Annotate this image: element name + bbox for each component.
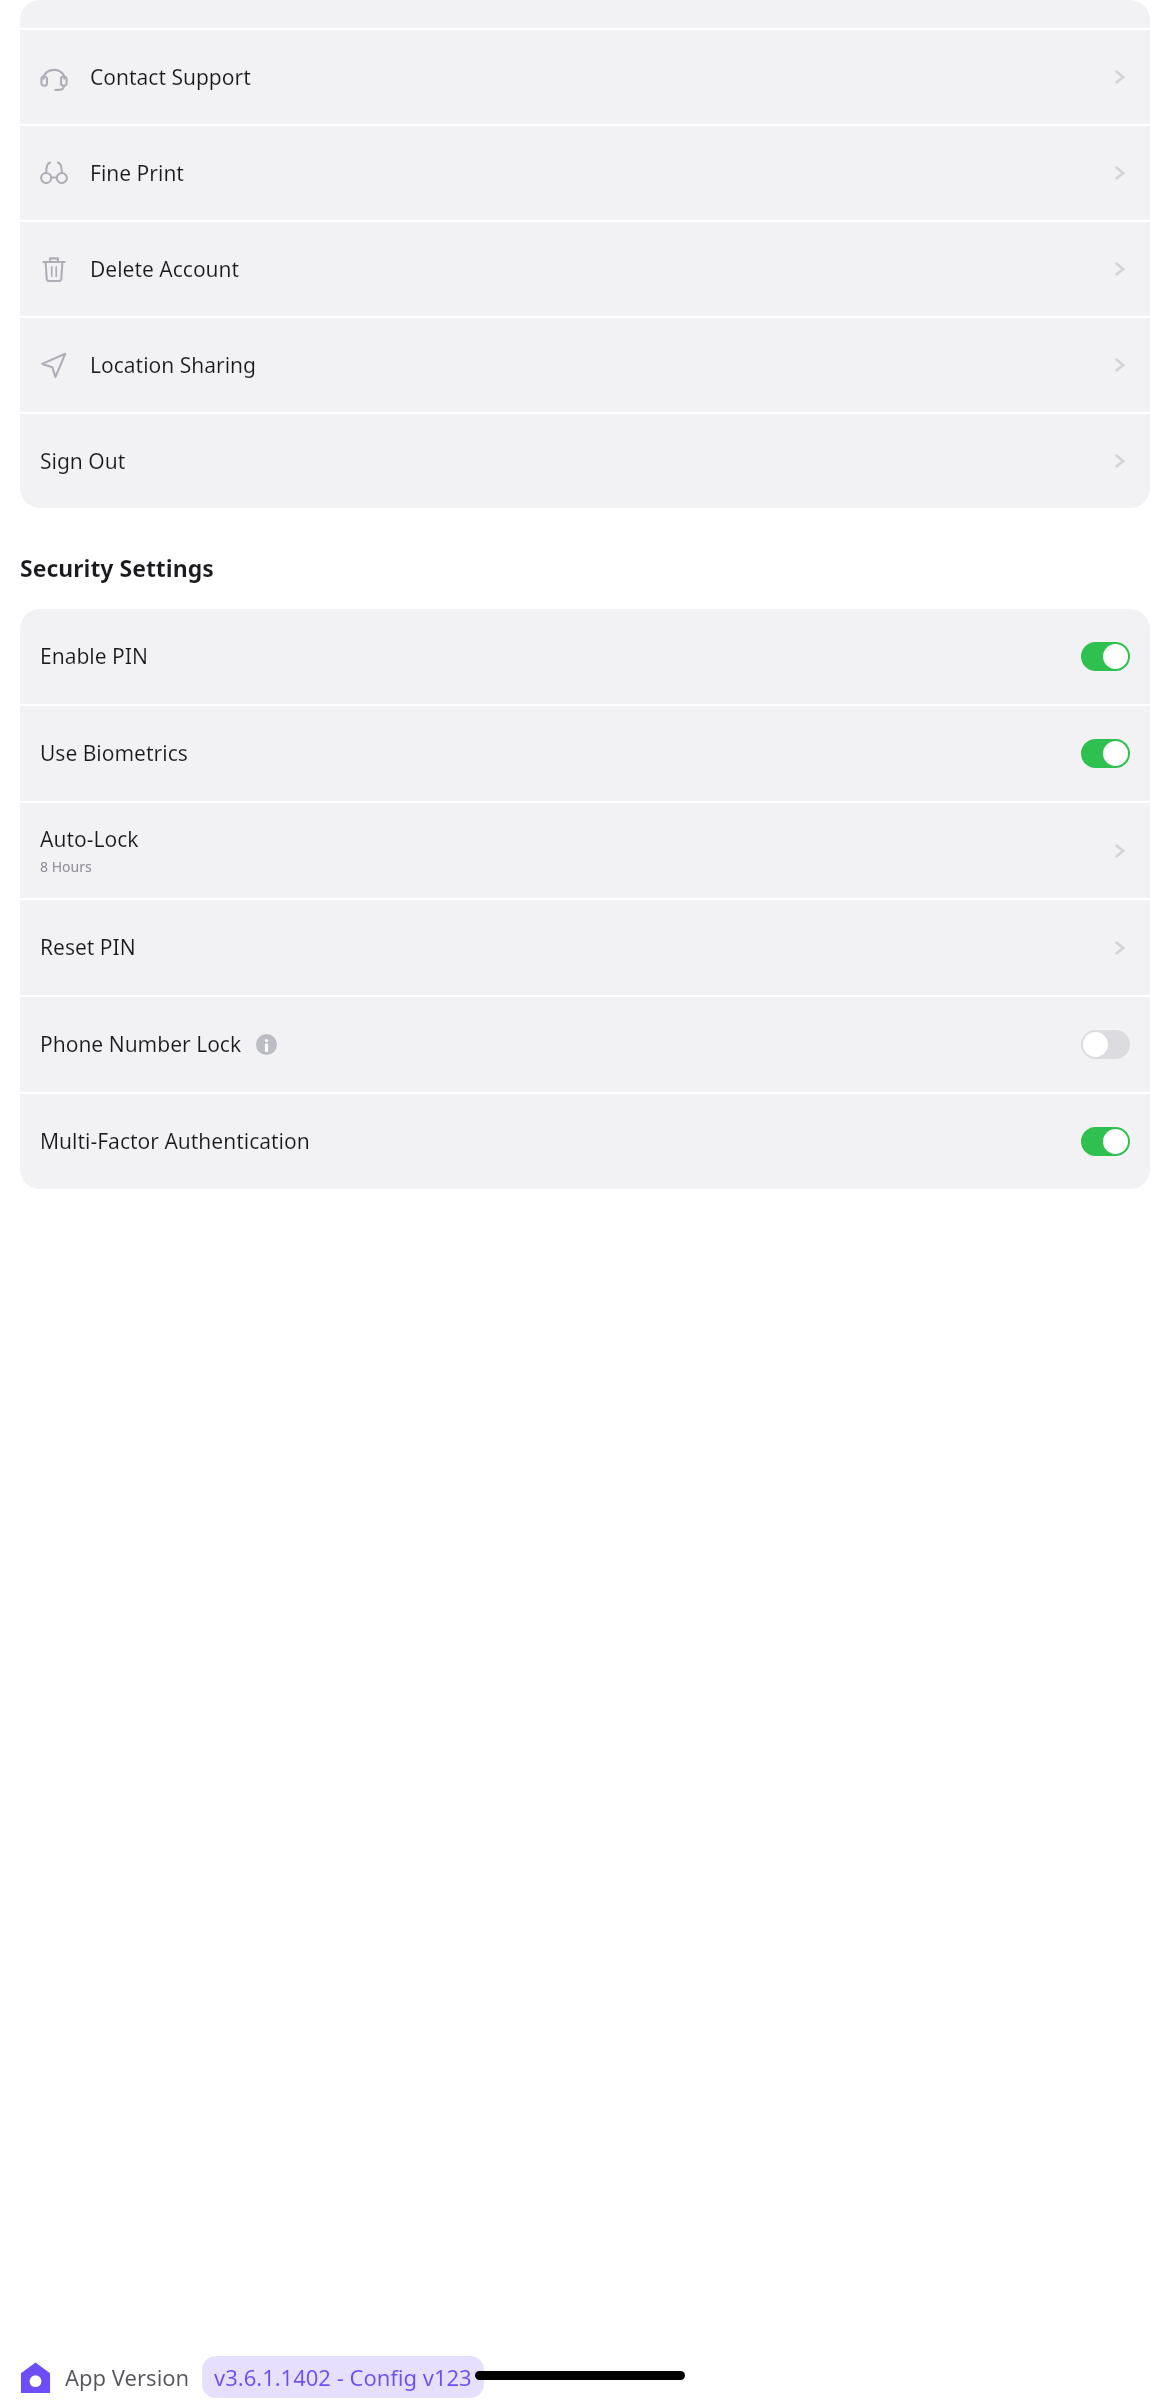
button[interactable]: Reset PIN: [20, 900, 1150, 995]
staticText: Enable PIN: [40, 642, 148, 671]
button[interactable]: Location Sharing: [20, 318, 1150, 412]
button[interactable]: Multi-Factor Authentication: [20, 1094, 1150, 1189]
button[interactable]: On: [1081, 1127, 1130, 1156]
button[interactable]: Auto-Lock: [20, 803, 1150, 898]
button[interactable]: Contact Support: [20, 30, 1150, 124]
button[interactable]: Enable PIN: [20, 609, 1150, 704]
staticText: Phone Number Lock: [40, 1030, 242, 1059]
staticText: Location Sharing: [90, 351, 256, 380]
staticText: v3.6.1.1402 - Config v123: [214, 2362, 472, 2392]
other: Info: [256, 1034, 277, 1055]
staticText: App Version: [65, 2362, 190, 2392]
staticText: Security Settings: [20, 552, 214, 583]
staticText: Sign Out: [40, 447, 126, 476]
staticText: Auto-Lock: [40, 825, 139, 854]
staticText: Contact Support: [90, 63, 251, 92]
staticText: Delete Account: [90, 255, 240, 284]
button[interactable]: Off: [1081, 1030, 1130, 1059]
staticText: 8 Hours: [40, 857, 92, 876]
button[interactable]: Phone Number Lock: [20, 997, 1150, 1092]
button[interactable]: Sign Out: [20, 414, 1150, 508]
button[interactable]: Delete Account: [20, 222, 1150, 316]
button[interactable]: On: [1081, 739, 1130, 768]
staticText: Fine Print: [90, 159, 184, 188]
button[interactable]: On: [1081, 642, 1130, 671]
staticText: Reset PIN: [40, 933, 136, 962]
button[interactable]: Use Biometrics: [20, 706, 1150, 801]
staticText: Multi-Factor Authentication: [40, 1127, 310, 1156]
button[interactable]: Fine Print: [20, 126, 1150, 220]
staticText: Use Biometrics: [40, 739, 188, 768]
